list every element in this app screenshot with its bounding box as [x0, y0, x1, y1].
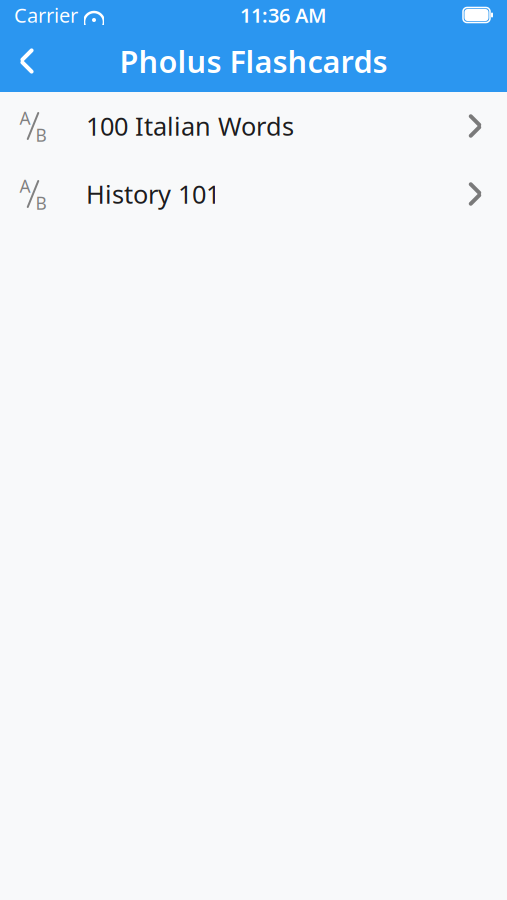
button[interactable]: A: [0, 160, 507, 228]
button[interactable]: Back: [0, 32, 54, 90]
staticText: History 101: [86, 177, 220, 211]
staticText: Pholus Flashcards: [119, 41, 387, 81]
staticText: B: [35, 123, 46, 146]
staticText: 11:36 AM: [240, 2, 327, 28]
staticText: Carrier: [14, 2, 78, 28]
button[interactable]: A: [0, 92, 507, 160]
staticText: 100 Italian Words: [86, 109, 294, 143]
staticText: A: [19, 174, 30, 197]
staticText: B: [35, 191, 46, 214]
staticText: A: [19, 106, 30, 129]
